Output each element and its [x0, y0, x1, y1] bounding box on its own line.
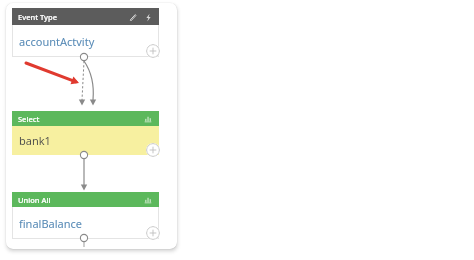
button[interactable]: Select	[12, 111, 159, 126]
staticText: Union All	[18, 195, 51, 205]
button[interactable]: finalBalance	[12, 207, 159, 239]
button[interactable]: Chart	[143, 195, 153, 205]
button[interactable]: Run	[142, 11, 154, 23]
staticText: finalBalance	[19, 216, 83, 231]
button[interactable]: Event Type	[12, 8, 159, 25]
button[interactable]: Chart	[143, 114, 153, 124]
button[interactable]: Add node	[146, 143, 160, 157]
button[interactable]: accountActvity	[12, 25, 159, 57]
staticText: Event Type	[18, 12, 57, 22]
staticText: Select	[18, 114, 40, 124]
button[interactable]: Union All	[12, 192, 159, 207]
button[interactable]: Add node	[146, 44, 160, 58]
button[interactable]: Add node	[146, 226, 160, 240]
staticText: accountActvity	[19, 34, 95, 49]
button[interactable]: Edit	[126, 11, 138, 23]
staticText: bank1	[19, 133, 51, 148]
button[interactable]: bank1	[12, 126, 159, 155]
